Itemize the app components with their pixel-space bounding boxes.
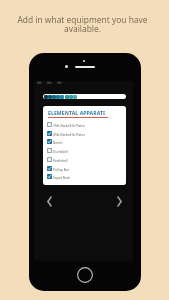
button[interactable]: Bench [47,139,126,144]
staticText: Pullup Bar [53,167,70,171]
button[interactable]: Home [77,267,93,283]
button[interactable]: Next [113,195,126,208]
button[interactable]: Dumbbell [47,148,126,153]
button[interactable]: 45lb Barbell & Plates [47,131,126,136]
staticText: ELEMENTAL APPARATI [48,109,106,116]
button[interactable]: Squat Rack [47,174,126,179]
staticText: Add in what equipment you have available… [14,14,151,35]
staticText: Dumbbell [53,149,69,153]
button[interactable]: Kettlebell [47,157,126,162]
button[interactable]: 35lb Barbell & Plates [47,122,126,127]
button[interactable]: Previous [43,195,56,208]
staticText: 35lb Barbell & Plates [53,123,85,127]
staticText: Kettlebell [53,158,68,162]
staticText: 45lb Barbell & Plates [53,132,85,136]
staticText: Bench [53,140,63,144]
staticText: Squat Rack [53,175,71,179]
button[interactable]: Pullup Bar [47,166,126,171]
